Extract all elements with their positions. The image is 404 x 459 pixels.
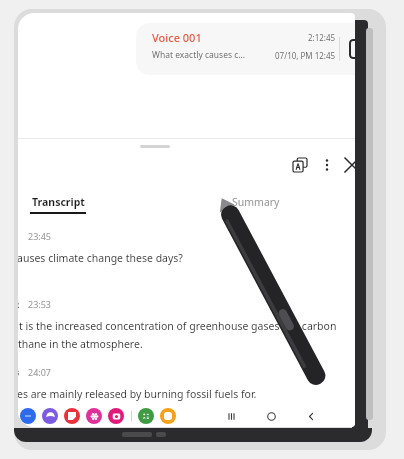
staticText: What exactly causes c... (152, 49, 246, 61)
button[interactable]: Transcript (18, 193, 108, 219)
staticText: Summary (232, 195, 280, 209)
staticText: 23:53 (28, 298, 52, 310)
staticText: causes climate change these days? (18, 251, 183, 265)
button[interactable]: Internet (42, 408, 58, 424)
button[interactable]: My Files (160, 408, 176, 424)
staticText: 2:12:45 (308, 32, 336, 43)
staticText: ethane in the atmosphere. (18, 337, 143, 351)
button[interactable]: Recents (216, 407, 246, 425)
staticText: 23:45 (28, 230, 52, 242)
button[interactable]: Home (256, 407, 286, 425)
button[interactable]: Calculator (138, 408, 154, 424)
button[interactable]: Gallery (86, 408, 102, 424)
button[interactable]: Close (340, 153, 355, 177)
button[interactable]: Back (296, 407, 326, 425)
button[interactable]: More options (315, 153, 339, 177)
button[interactable]: Messages (20, 408, 36, 424)
staticText: Transcript (32, 195, 85, 209)
button[interactable]: Voice 001 (136, 23, 355, 75)
button[interactable]: Translate (288, 153, 312, 177)
staticText: Voice 001 (152, 30, 202, 45)
button[interactable]: Summary (218, 193, 304, 219)
staticText: rit is the increased concentration of gr… (18, 319, 337, 333)
staticText: 3 (18, 366, 20, 378)
staticText: ses are mainly released by burning fossi… (18, 387, 257, 401)
button[interactable]: Camera (108, 408, 124, 424)
staticText: 24:07 (28, 366, 52, 378)
button[interactable]: Transcript (349, 39, 355, 59)
button[interactable]: Notes (64, 408, 80, 424)
staticText: 2 (18, 298, 20, 310)
staticText: 07/10, PM 12:45 (275, 50, 336, 61)
